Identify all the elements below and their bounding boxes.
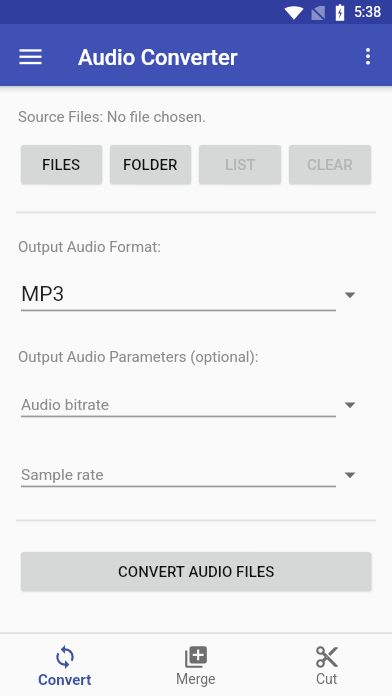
button[interactable]: FOLDER — [110, 145, 191, 184]
button[interactable]: CLEAR — [289, 145, 371, 184]
button[interactable]: More options — [346, 31, 390, 75]
staticText: Merge — [176, 671, 216, 687]
staticText: Audio Converter — [78, 45, 238, 71]
button[interactable]: CONVERT AUDIO FILES — [21, 552, 371, 591]
staticText: CONVERT AUDIO FILES — [118, 563, 275, 581]
button[interactable]: Convert — [0, 634, 130, 696]
staticText: Convert — [38, 671, 92, 689]
staticText: Source Files: No file chosen. — [18, 108, 207, 126]
staticText: Output Audio Format: — [18, 238, 161, 256]
button[interactable]: FILES — [21, 145, 102, 184]
staticText: CLEAR — [307, 156, 353, 174]
staticText: MP3 — [21, 282, 65, 307]
staticText: FOLDER — [123, 156, 178, 174]
button[interactable]: Cut — [261, 634, 392, 696]
staticText: FILES — [42, 156, 81, 174]
button[interactable]: Open navigation drawer — [8, 31, 52, 75]
staticText: Audio bitrate — [21, 396, 109, 414]
staticText: Output Audio Parameters (optional): — [18, 348, 259, 366]
staticText: 5:38 — [354, 4, 381, 20]
staticText: LIST — [225, 156, 256, 174]
button[interactable]: LIST — [199, 145, 281, 184]
button[interactable]: Merge — [130, 634, 261, 696]
staticText: Sample rate — [21, 466, 104, 484]
staticText: Cut — [316, 671, 338, 687]
